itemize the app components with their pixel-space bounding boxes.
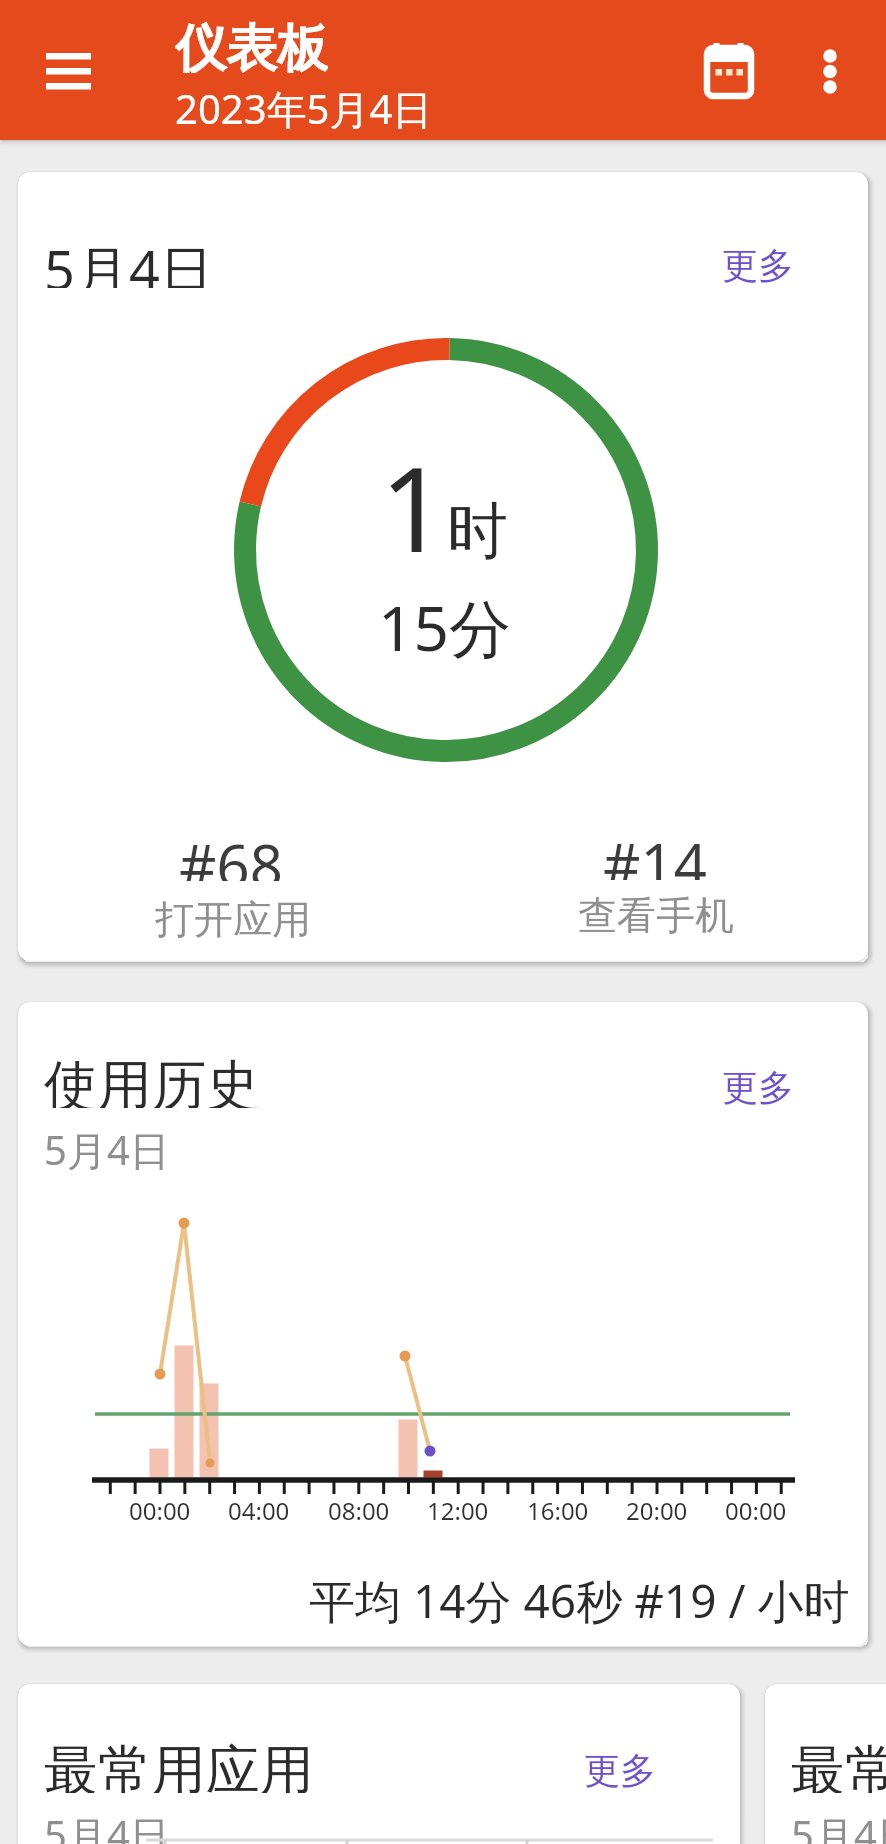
staticText: 12:00 <box>427 1494 489 1527</box>
staticText: 更多 <box>722 1065 794 1110</box>
staticText: 更多 <box>584 1748 656 1793</box>
staticText: 1时 <box>380 427 508 586</box>
staticText: 平均 14分 46秒 #19 / 小时 <box>309 1569 850 1625</box>
button[interactable] <box>806 42 854 102</box>
staticText: 更多 <box>722 243 794 288</box>
staticText: 20:00 <box>626 1494 688 1527</box>
staticText: 16:00 <box>527 1494 589 1527</box>
staticText: 04:00 <box>228 1494 290 1527</box>
staticText: 00:00 <box>129 1494 191 1527</box>
staticText: 使用历史 <box>44 1052 260 1108</box>
button[interactable] <box>697 40 761 104</box>
button[interactable] <box>34 38 102 106</box>
staticText: 5月4日 <box>791 1807 886 1844</box>
staticText: 仪表板 <box>175 17 328 73</box>
button[interactable]: 更多 <box>709 1063 807 1111</box>
staticText: 最常用应用 <box>791 1737 886 1793</box>
staticText: 15分 <box>378 585 511 670</box>
staticText: #68 <box>179 825 283 881</box>
staticText: 00:00 <box>725 1494 787 1527</box>
staticText: 08:00 <box>328 1494 390 1527</box>
staticText: 5月4日 <box>44 1807 170 1844</box>
button[interactable]: 更多 <box>571 1746 669 1794</box>
button[interactable]: 更多 <box>709 241 807 289</box>
staticText: 查看手机 <box>578 891 734 939</box>
staticText: #14 <box>603 824 707 880</box>
staticText: 5月4日 <box>44 1122 170 1170</box>
staticText: 2023年5月4日 <box>175 81 433 129</box>
staticText: 最常用应用 <box>44 1737 314 1793</box>
staticText: 打开应用 <box>155 895 311 943</box>
staticText: 5月4日 <box>44 232 214 288</box>
